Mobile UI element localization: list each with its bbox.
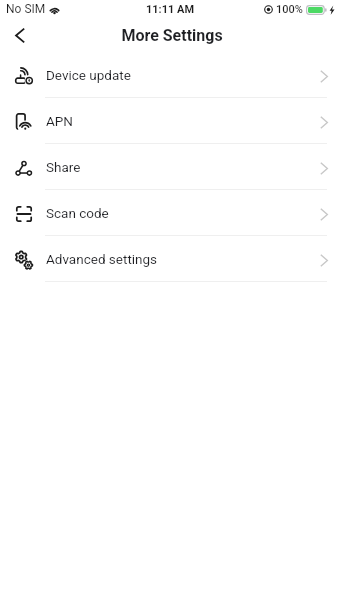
staticText: 100% [276, 3, 303, 16]
staticText: Scan code [46, 205, 109, 221]
staticText: No SIM [6, 2, 46, 16]
button[interactable]: Scan code [0, 190, 340, 235]
staticText: APN [46, 113, 73, 129]
staticText: Advanced settings [46, 251, 158, 267]
button[interactable]: Back [0, 20, 38, 52]
button[interactable]: APN [0, 98, 340, 143]
staticText: Share [46, 159, 81, 175]
staticText: 11:11 AM [146, 3, 195, 16]
staticText: Device update [46, 67, 131, 83]
button[interactable]: Device update [0, 52, 340, 97]
button[interactable]: Share [0, 144, 340, 189]
button[interactable]: Advanced settings [0, 236, 340, 281]
staticText: More Settings [121, 26, 223, 45]
